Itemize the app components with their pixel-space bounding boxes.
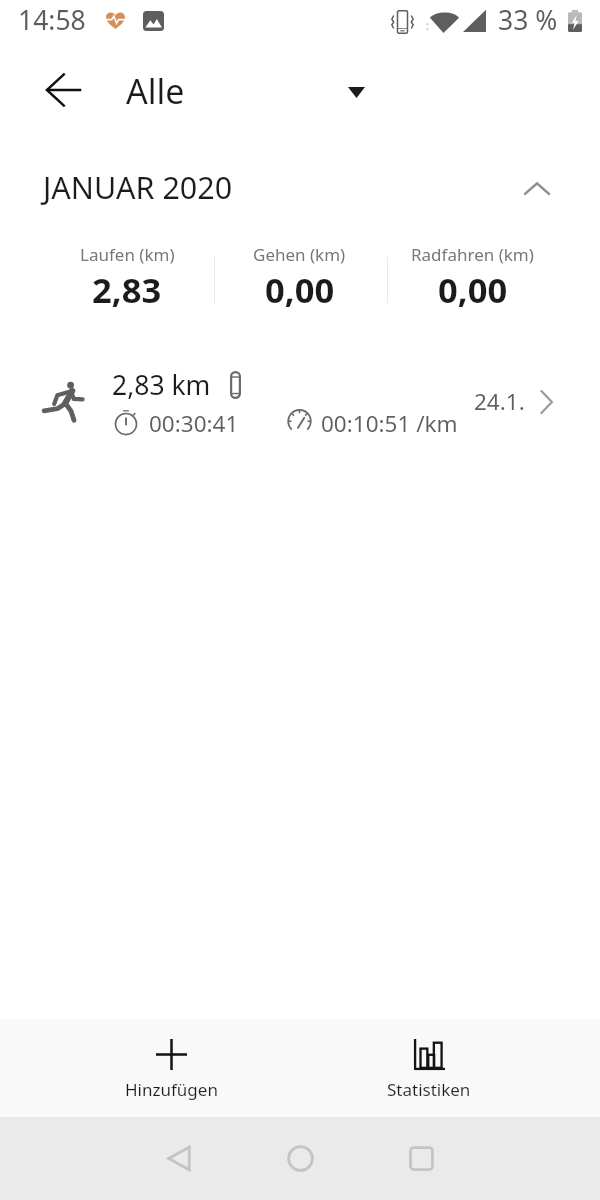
staticText: 00:30:41 [149, 408, 239, 439]
staticText: 2,83 [92, 266, 162, 313]
button[interactable]: Hinzufügen [109, 1019, 233, 1117]
button[interactable]: 2,83 km [0, 356, 600, 446]
staticText: Laufen (km) [80, 243, 175, 266]
staticText: 00:10:51 /km [321, 408, 458, 439]
staticText: Statistiken [387, 1078, 471, 1101]
staticText: 0,00 [438, 266, 508, 313]
button[interactable]: Startbildschirm [276, 1134, 324, 1182]
button[interactable]: Übersicht [397, 1134, 445, 1182]
button[interactable]: Zurück [155, 1134, 203, 1182]
button[interactable]: Zeitraum auswählen [330, 68, 382, 116]
staticText: 0,00 [265, 266, 335, 313]
staticText: Gehen (km) [253, 243, 346, 266]
staticText: JANUAR 2020 [43, 166, 233, 208]
staticText: Hinzufügen [125, 1078, 218, 1101]
button[interactable]: Statistiken [367, 1019, 491, 1117]
staticText: 33 % [498, 2, 558, 38]
staticText: 2,83 km [112, 367, 211, 403]
staticText: Radfahren (km) [411, 243, 534, 266]
staticText: 24.1. [474, 386, 525, 417]
button[interactable]: JANUAR 2020 [0, 155, 600, 215]
staticText: 14:58 [18, 2, 86, 38]
staticText: Alle [126, 68, 185, 114]
button[interactable]: Zurück [36, 62, 92, 118]
